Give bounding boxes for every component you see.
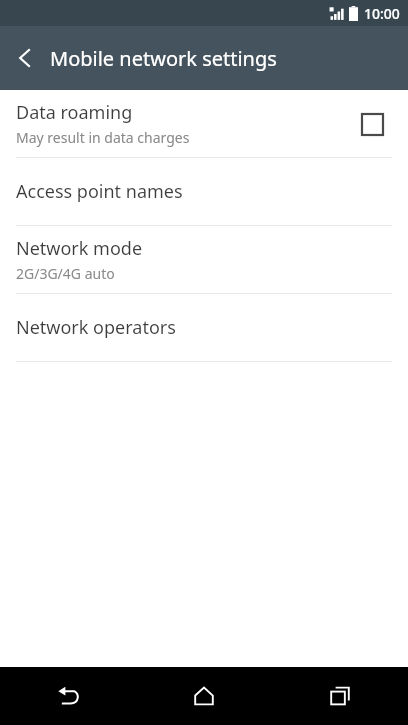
button[interactable]: Home [136, 667, 272, 725]
button[interactable]: Data roaming [0, 90, 408, 157]
button[interactable]: Recents [272, 667, 408, 725]
staticText: Access point names [16, 179, 183, 204]
staticText: May result in data charges [16, 128, 190, 147]
button[interactable]: Back [0, 26, 50, 90]
button[interactable]: Network mode [0, 226, 408, 293]
staticText: Data roaming [16, 100, 133, 125]
button[interactable]: Network operators [0, 294, 408, 361]
staticText: Network mode [16, 236, 143, 261]
staticText: Network operators [16, 315, 176, 340]
button[interactable]: Data roaming checkbox [352, 104, 392, 144]
staticText: Mobile network settings [50, 45, 277, 72]
staticText: 2G/3G/4G auto [16, 264, 115, 283]
button[interactable]: Back [0, 667, 136, 725]
staticText: 10:00 [364, 4, 400, 23]
button[interactable]: Access point names [0, 158, 408, 225]
